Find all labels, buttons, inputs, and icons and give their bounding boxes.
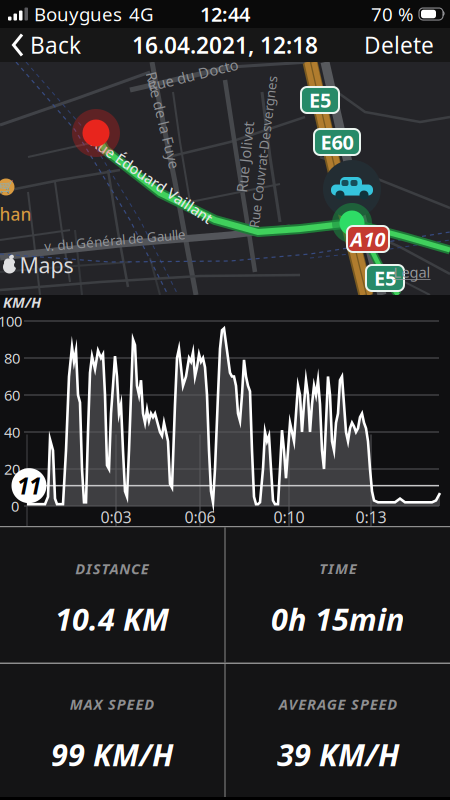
button[interactable]: Delete	[364, 28, 450, 62]
staticText: 10.4 KM	[55, 598, 169, 639]
staticText: 20	[4, 459, 20, 479]
staticText: 12:44	[200, 1, 250, 27]
staticText: DISTANCE	[75, 559, 149, 578]
staticText: Rue Couvrat-Desvergnes	[186, 143, 339, 161]
staticText: 11	[17, 471, 41, 501]
staticText: v. du Général de Gaulle	[44, 231, 186, 249]
staticText: Rue Jolivet	[209, 147, 280, 167]
button[interactable]: Legal	[393, 262, 430, 282]
staticText: chan	[0, 202, 31, 225]
staticText: A10	[350, 226, 385, 252]
staticText: 0	[11, 496, 19, 516]
staticText: AVERAGE SPEED	[279, 694, 397, 714]
staticText: Rue du Docto	[146, 65, 239, 85]
staticText: 0:03	[100, 506, 131, 528]
staticText: Rue de la Fuye	[113, 110, 212, 130]
staticText: 0h 15min	[271, 598, 405, 639]
staticText: 70 %	[371, 2, 414, 26]
staticText: 39 KM/H	[277, 734, 399, 775]
staticText: KM/H	[3, 292, 41, 312]
staticText: 99 KM/H	[51, 734, 173, 775]
staticText: E5	[374, 265, 396, 291]
staticText: 0:13	[355, 506, 386, 528]
staticText: MAX SPEED	[70, 694, 154, 714]
staticText: 🛒	[0, 180, 13, 194]
staticText: E5	[309, 87, 331, 113]
button[interactable]: Back	[0, 28, 81, 62]
staticText: Maps	[19, 251, 73, 279]
staticText: E60	[320, 129, 353, 155]
staticText: 80	[4, 348, 20, 368]
staticText: 100	[0, 311, 22, 331]
staticText: Rue Édouard Vaillant	[80, 170, 224, 190]
staticText: 40	[4, 422, 20, 442]
staticText: Bouygues	[34, 2, 122, 26]
staticText: 4G	[129, 2, 154, 26]
staticText: TIME	[319, 559, 357, 578]
staticText: Legal	[393, 262, 430, 282]
staticText: 0:10	[273, 506, 304, 528]
staticText: Delete	[364, 30, 434, 60]
staticText: 0:06	[184, 506, 215, 528]
staticText: 16.04.2021, 12:18	[132, 30, 318, 60]
staticText: Back	[30, 30, 81, 60]
staticText: 60	[4, 385, 20, 405]
